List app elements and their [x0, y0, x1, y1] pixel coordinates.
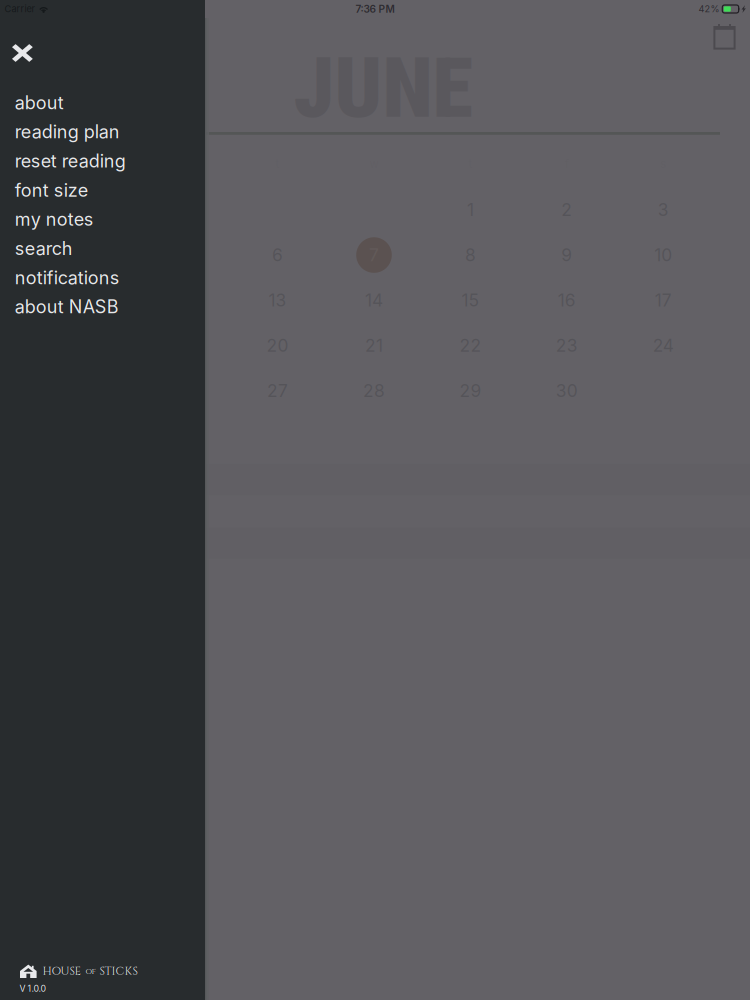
staticText: 11 [78, 290, 92, 311]
staticText: font size [15, 179, 88, 201]
staticText: 29 [459, 380, 481, 401]
staticText: V 1.0.0 [19, 983, 46, 994]
staticText: 30 [556, 380, 578, 401]
staticText: 22 [459, 335, 481, 356]
staticText: 10 [654, 245, 672, 266]
staticText: 8 [465, 245, 476, 266]
staticText: 16 [558, 290, 576, 311]
staticText: 14 [365, 290, 383, 311]
button[interactable]: reset reading [0, 146, 205, 175]
staticText: about [15, 92, 64, 113]
button[interactable]: about NASB [0, 292, 205, 321]
button[interactable]: search [0, 234, 205, 263]
staticText: 7:36 PM [355, 3, 394, 15]
button[interactable]: morning reading [0, 464, 750, 495]
staticText: 21 [365, 335, 383, 356]
staticText: 1 [467, 199, 474, 220]
staticText: 3 [658, 199, 669, 220]
staticText: 13 [269, 290, 287, 311]
button[interactable]: font size [0, 176, 205, 205]
staticText: 23 [556, 335, 578, 356]
staticText: 28 [363, 380, 385, 401]
button[interactable]: reading plan [0, 117, 205, 146]
staticText: 27 [267, 380, 288, 401]
staticText: 20 [267, 335, 289, 356]
staticText: 15 [461, 290, 479, 311]
button[interactable]: Calendar [702, 15, 746, 59]
staticText: s [82, 157, 88, 171]
staticText: 24 [653, 335, 674, 356]
staticText: 2 [561, 199, 572, 220]
staticText: about NASB [15, 296, 119, 318]
staticText: HOUSE [43, 964, 82, 979]
staticText: notifications [15, 267, 120, 288]
staticText: 6 [272, 245, 283, 266]
staticText: Carrier [4, 3, 34, 14]
button[interactable]: evening reading [0, 527, 750, 559]
staticText: 9 [561, 245, 572, 266]
staticText: my notes [15, 208, 94, 230]
staticText: reset reading [15, 150, 126, 172]
staticText: search [15, 238, 73, 259]
staticText: 42% [699, 3, 720, 14]
button[interactable]: my notes [0, 205, 205, 234]
staticText: 17 [655, 290, 672, 311]
staticText: STICKS [100, 964, 138, 979]
button[interactable]: notifications [0, 263, 205, 292]
staticText: JUNE [293, 40, 472, 137]
button[interactable]: about [0, 88, 205, 117]
button[interactable]: Close menu [0, 31, 68, 75]
staticText: reading plan [15, 121, 120, 143]
staticText: of [86, 965, 96, 977]
